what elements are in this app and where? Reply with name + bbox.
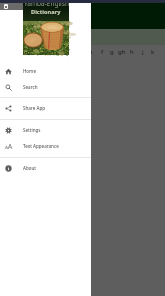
button[interactable]: k — [148, 45, 158, 59]
staticText: e — [89, 48, 93, 56]
button[interactable]: c — [66, 45, 76, 59]
button[interactable]: gh — [117, 45, 127, 59]
staticText: Yamba-English — [24, 0, 69, 8]
staticText: Settings — [23, 127, 41, 133]
button[interactable]: Home — [0, 63, 91, 79]
staticText: About — [23, 165, 37, 171]
button[interactable]: e — [86, 45, 96, 59]
staticText: Home — [23, 68, 36, 74]
button[interactable]: h — [127, 45, 137, 59]
button[interactable]: Search — [0, 79, 91, 95]
staticText: Dictionary — [31, 8, 61, 16]
button[interactable]: j — [138, 45, 148, 59]
staticText: Search — [23, 84, 38, 90]
button[interactable]: Share App — [0, 100, 91, 116]
button[interactable]: f — [97, 45, 107, 59]
button[interactable]: Settings — [0, 122, 91, 138]
staticText: f — [101, 48, 104, 56]
staticText: a — [48, 48, 52, 56]
button[interactable]: b — [55, 45, 65, 59]
staticText: gh — [118, 48, 126, 56]
button[interactable]: About — [0, 160, 91, 176]
staticText: j — [142, 48, 144, 56]
staticText: b — [58, 48, 62, 56]
button[interactable]: a — [45, 45, 55, 59]
button[interactable]: Text Appearance — [0, 138, 91, 154]
staticText: k — [151, 48, 155, 56]
staticText: g — [110, 48, 114, 56]
staticText: Share App — [23, 105, 45, 111]
staticText: Text Appearance — [23, 143, 59, 149]
button[interactable]: g — [107, 45, 117, 59]
staticText: h — [130, 48, 134, 56]
